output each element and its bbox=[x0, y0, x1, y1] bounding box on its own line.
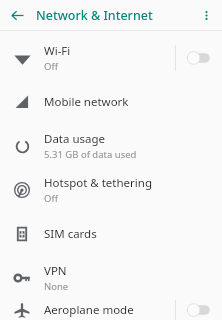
staticText: 5.31 GB of data used bbox=[44, 148, 137, 161]
staticText: SIM cards bbox=[44, 226, 97, 242]
button[interactable]: Toggle Aeroplane mode bbox=[176, 300, 222, 320]
button[interactable]: SIM cards bbox=[0, 212, 222, 256]
staticText: Off bbox=[44, 192, 58, 205]
staticText: Data usage bbox=[44, 131, 106, 147]
button[interactable]: More options bbox=[195, 4, 217, 26]
button[interactable]: Data usage bbox=[0, 124, 222, 168]
button[interactable]: Hotspot & tethering bbox=[0, 168, 222, 212]
staticText: VPN bbox=[44, 263, 67, 279]
button[interactable]: Aeroplane mode bbox=[0, 300, 222, 320]
button[interactable]: VPN bbox=[0, 256, 222, 300]
button[interactable]: Toggle Wi-Fi bbox=[176, 36, 222, 80]
staticText: Hotspot & tethering bbox=[44, 175, 152, 191]
staticText: Off bbox=[44, 60, 58, 73]
staticText: Mobile network bbox=[44, 94, 129, 110]
staticText: Wi-Fi bbox=[44, 43, 71, 59]
button[interactable]: Mobile network bbox=[0, 80, 222, 124]
staticText: None bbox=[44, 280, 69, 293]
staticText: Aeroplane mode bbox=[44, 302, 134, 318]
button[interactable]: Wi-Fi bbox=[0, 36, 222, 80]
staticText: Network & Internet bbox=[36, 7, 153, 24]
button[interactable]: Back bbox=[5, 3, 29, 27]
